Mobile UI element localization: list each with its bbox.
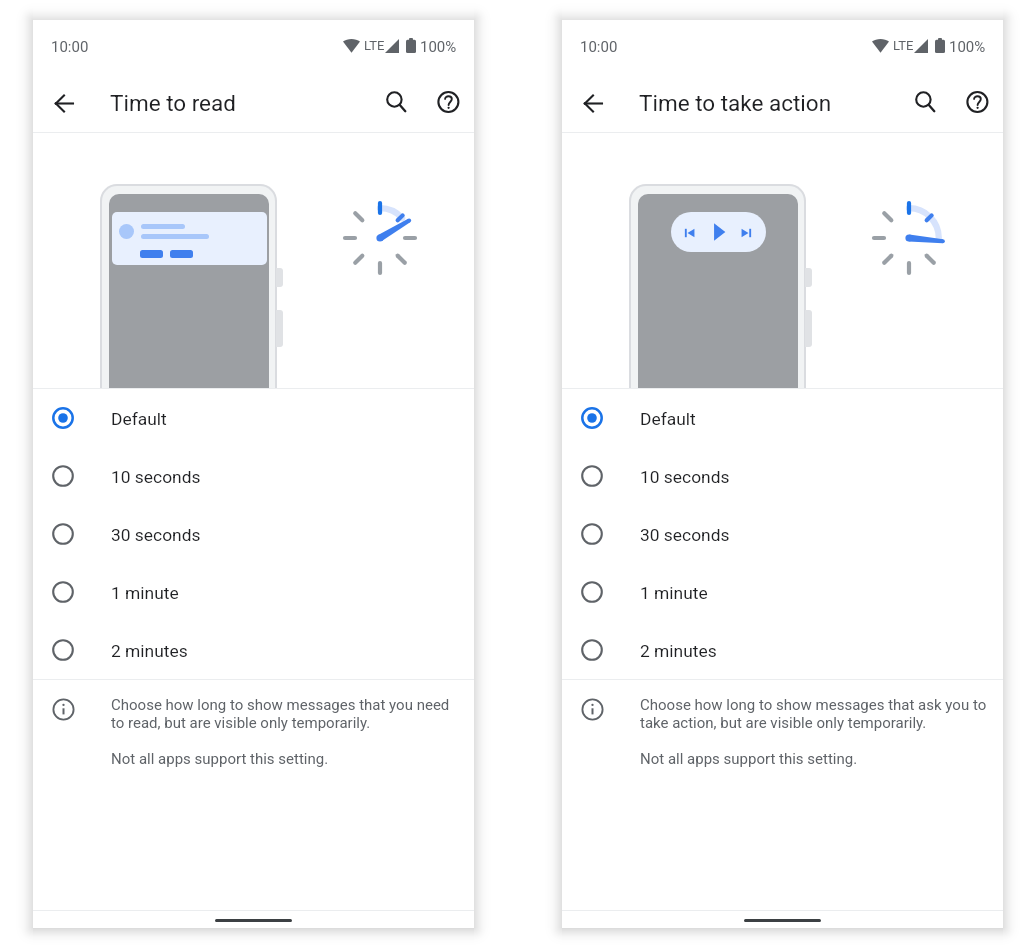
button[interactable]: Help xyxy=(959,84,995,120)
staticText: Not all apps support this setting. xyxy=(640,750,858,768)
button[interactable]: 2 minutes xyxy=(33,621,474,679)
staticText: Choose how long to show messages that as… xyxy=(640,696,992,732)
staticText: 2 minutes xyxy=(111,641,188,661)
staticText: 10 seconds xyxy=(111,467,201,487)
staticText: 100% xyxy=(949,38,986,56)
staticText: Choose how long to show messages that yo… xyxy=(111,696,463,732)
button[interactable]: Default xyxy=(562,389,1003,447)
button[interactable]: Search xyxy=(377,84,413,120)
button[interactable]: 30 seconds xyxy=(33,505,474,563)
button[interactable]: 10 seconds xyxy=(562,447,1003,505)
button[interactable]: Search xyxy=(906,84,942,120)
staticText: 30 seconds xyxy=(640,525,730,545)
staticText: Default xyxy=(640,409,696,429)
staticText: 10 seconds xyxy=(640,467,730,487)
staticText: LTE xyxy=(893,38,914,53)
button[interactable]: 2 minutes xyxy=(562,621,1003,679)
staticText: Default xyxy=(111,409,167,429)
staticText: 2 minutes xyxy=(640,641,717,661)
staticText: 1 minute xyxy=(111,583,179,603)
staticText: Time to read xyxy=(110,90,236,116)
staticText: 1 minute xyxy=(640,583,708,603)
staticText: 10:00 xyxy=(51,38,89,56)
staticText: 100% xyxy=(420,38,457,56)
button[interactable]: Help xyxy=(430,84,466,120)
staticText: LTE xyxy=(364,38,385,53)
staticText: Not all apps support this setting. xyxy=(111,750,329,768)
button[interactable]: Back xyxy=(46,93,82,114)
button[interactable]: Default xyxy=(33,389,474,447)
button[interactable]: 1 minute xyxy=(562,563,1003,621)
button[interactable]: 30 seconds xyxy=(562,505,1003,563)
button[interactable]: Back xyxy=(575,93,611,114)
staticText: Time to take action xyxy=(639,90,832,116)
button[interactable]: 10 seconds xyxy=(33,447,474,505)
staticText: 30 seconds xyxy=(111,525,201,545)
staticText: 10:00 xyxy=(580,38,618,56)
button[interactable]: 1 minute xyxy=(33,563,474,621)
